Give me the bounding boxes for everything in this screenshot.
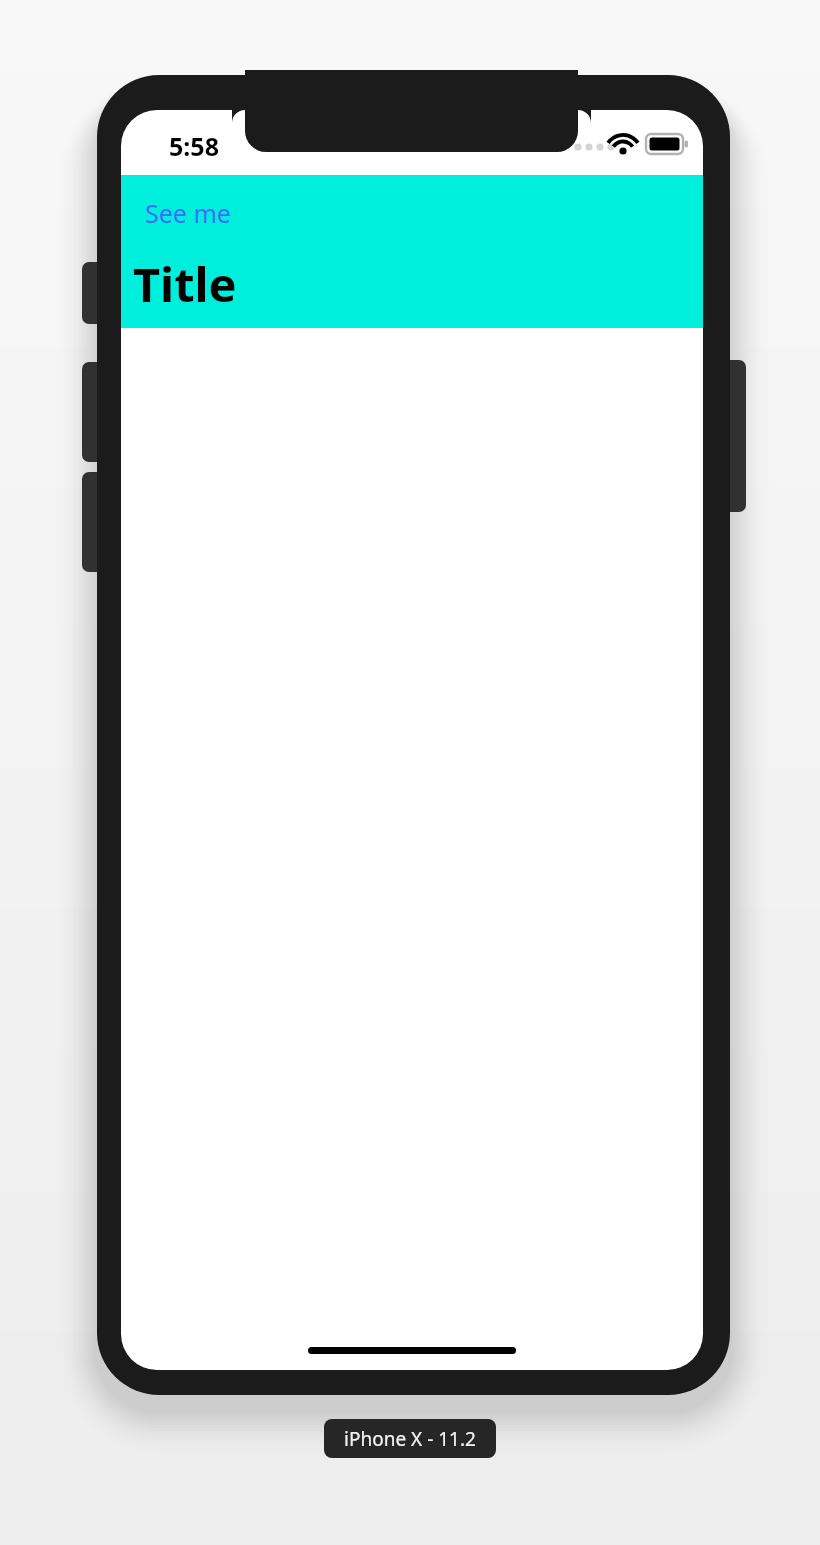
staticText: 5:58 (169, 129, 219, 163)
staticText: Title (133, 252, 237, 316)
staticText: iPhone X - 11.2 (344, 1426, 476, 1452)
staticText: See me (145, 196, 231, 230)
button[interactable]: See me (143, 194, 233, 232)
button[interactable]: Device: iPhone X - 11.2 (324, 1419, 496, 1458)
button[interactable]: Title (131, 250, 239, 318)
